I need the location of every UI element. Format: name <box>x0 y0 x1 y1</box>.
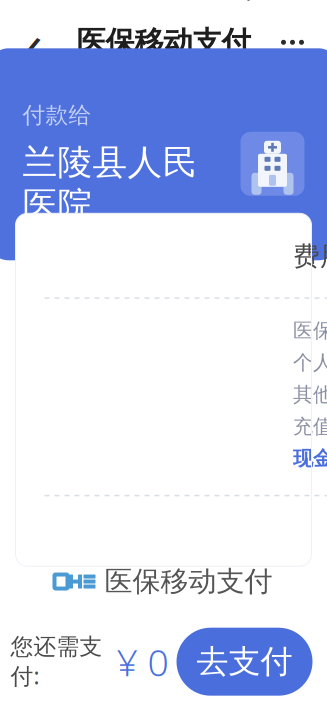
button[interactable]: 去支付 <box>176 628 312 696</box>
staticText: 去支付 <box>196 642 292 681</box>
staticText: 费用总额 <box>293 240 327 273</box>
staticText: 付款给 <box>22 101 91 129</box>
staticText: ¥ 0 <box>116 637 168 686</box>
staticText: 充值卡支付: <box>293 412 327 439</box>
staticText: 兰陵县人民医院 <box>22 141 197 226</box>
staticText: 现金支付: <box>293 444 327 471</box>
staticText: 您还需支付: <box>10 633 102 691</box>
staticText: 医保移动支付 <box>104 564 272 599</box>
staticText: 医保基金支付: <box>293 316 327 343</box>
staticText: 其他抵扣金额: <box>293 380 327 407</box>
staticText: 医保移动支付 <box>76 24 250 60</box>
staticText: ‹ <box>26 7 43 78</box>
button[interactable]: 更多 <box>268 18 316 66</box>
button[interactable]: 返回 <box>10 18 58 66</box>
staticText: 个人账户支付: <box>293 348 327 375</box>
